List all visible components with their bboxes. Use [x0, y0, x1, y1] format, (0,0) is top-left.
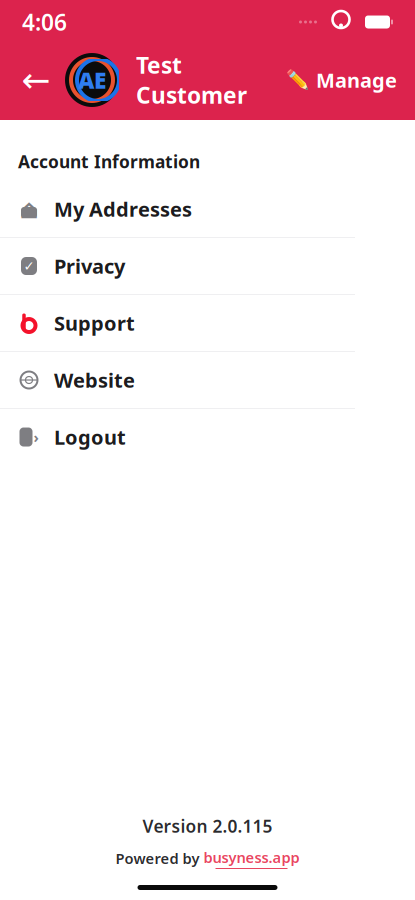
button[interactable]: Back: [14, 56, 58, 104]
staticText: Website: [54, 367, 135, 393]
button[interactable]: ✏️: [282, 56, 401, 104]
staticText: Test Customer: [136, 50, 247, 110]
staticText: Logout: [54, 424, 126, 450]
button[interactable]: ›: [0, 409, 415, 465]
staticText: ✏️: [286, 69, 309, 91]
staticText: Manage: [316, 67, 397, 93]
staticText: Account Information: [18, 150, 200, 173]
button[interactable]: Website: [0, 352, 415, 408]
staticText: My Addresses: [54, 196, 192, 222]
staticText: Privacy: [54, 253, 125, 279]
staticText: Version 2.0.115: [142, 814, 272, 837]
staticText: AE: [78, 65, 106, 95]
button[interactable]: ⌂: [0, 181, 415, 237]
staticText: ✓: [23, 258, 34, 274]
staticText: ←: [21, 60, 50, 100]
button[interactable]: Powered by: [115, 847, 299, 869]
staticText: ›: [33, 427, 38, 447]
button[interactable]: Support: [0, 295, 415, 351]
staticText: Powered by: [115, 848, 199, 868]
staticText: Support: [54, 310, 135, 336]
staticText: 4:06: [22, 7, 67, 37]
staticText: busyness.app: [203, 847, 299, 867]
button[interactable]: ✓: [0, 238, 415, 294]
staticText: ⌂: [19, 194, 38, 224]
